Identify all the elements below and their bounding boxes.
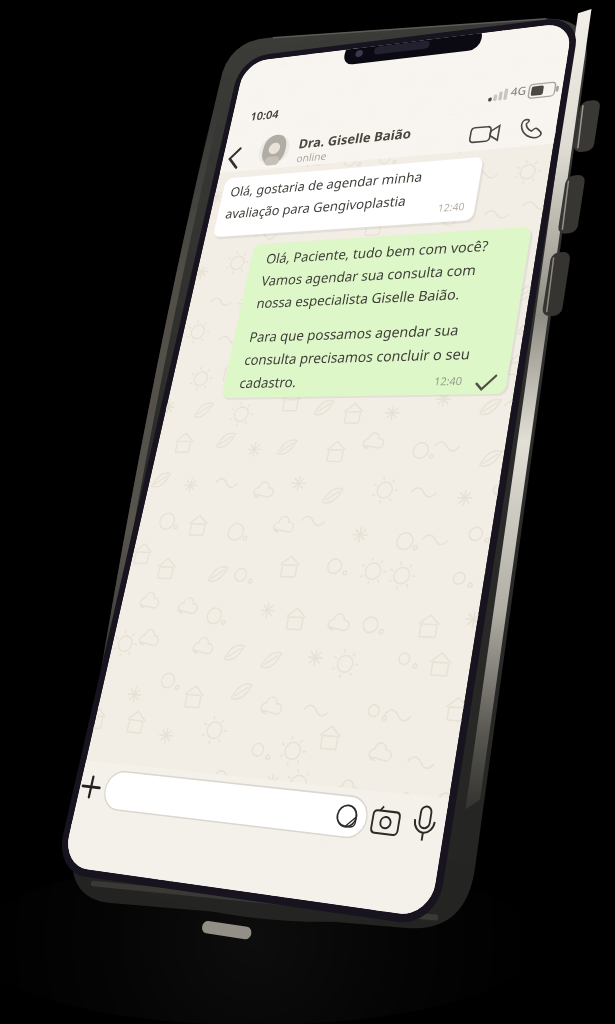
button[interactable] — [300, 120, 430, 160]
button[interactable] — [71, 767, 111, 807]
button[interactable] — [110, 765, 340, 835]
button[interactable] — [214, 134, 254, 174]
button[interactable] — [510, 106, 552, 146]
button[interactable] — [365, 803, 405, 847]
button[interactable] — [462, 112, 504, 152]
button[interactable] — [325, 800, 365, 844]
button[interactable] — [403, 807, 443, 851]
button[interactable] — [252, 128, 302, 176]
